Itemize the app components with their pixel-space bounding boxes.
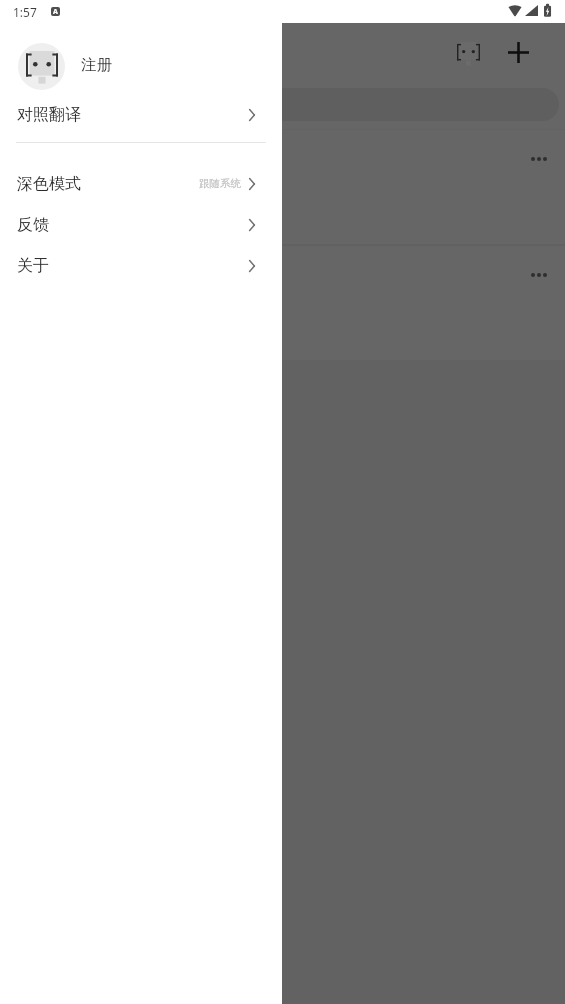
button[interactable]: More options xyxy=(0,130,565,244)
button[interactable]: 注册 xyxy=(0,23,282,94)
staticText: 跟随系统 xyxy=(199,177,241,190)
button[interactable]: More options xyxy=(0,246,565,360)
button[interactable]: Search xyxy=(0,88,559,121)
button[interactable]: Add xyxy=(496,30,540,74)
staticText: 反馈 xyxy=(17,215,49,235)
button[interactable]: 关于 xyxy=(0,245,282,286)
staticText: A xyxy=(53,7,58,16)
button[interactable]: 深色模式 xyxy=(0,163,282,204)
staticText: 关于 xyxy=(17,256,49,276)
staticText: 1:57 xyxy=(13,4,37,20)
staticText: 注册 xyxy=(81,55,112,75)
button[interactable]: Account xyxy=(446,30,490,74)
button[interactable]: 反馈 xyxy=(0,204,282,245)
staticText: 深色模式 xyxy=(17,174,81,194)
button[interactable]: More options xyxy=(523,143,555,175)
button[interactable]: 对照翻译 xyxy=(0,94,282,135)
staticText: 对照翻译 xyxy=(17,105,81,125)
button[interactable]: More options xyxy=(523,259,555,291)
